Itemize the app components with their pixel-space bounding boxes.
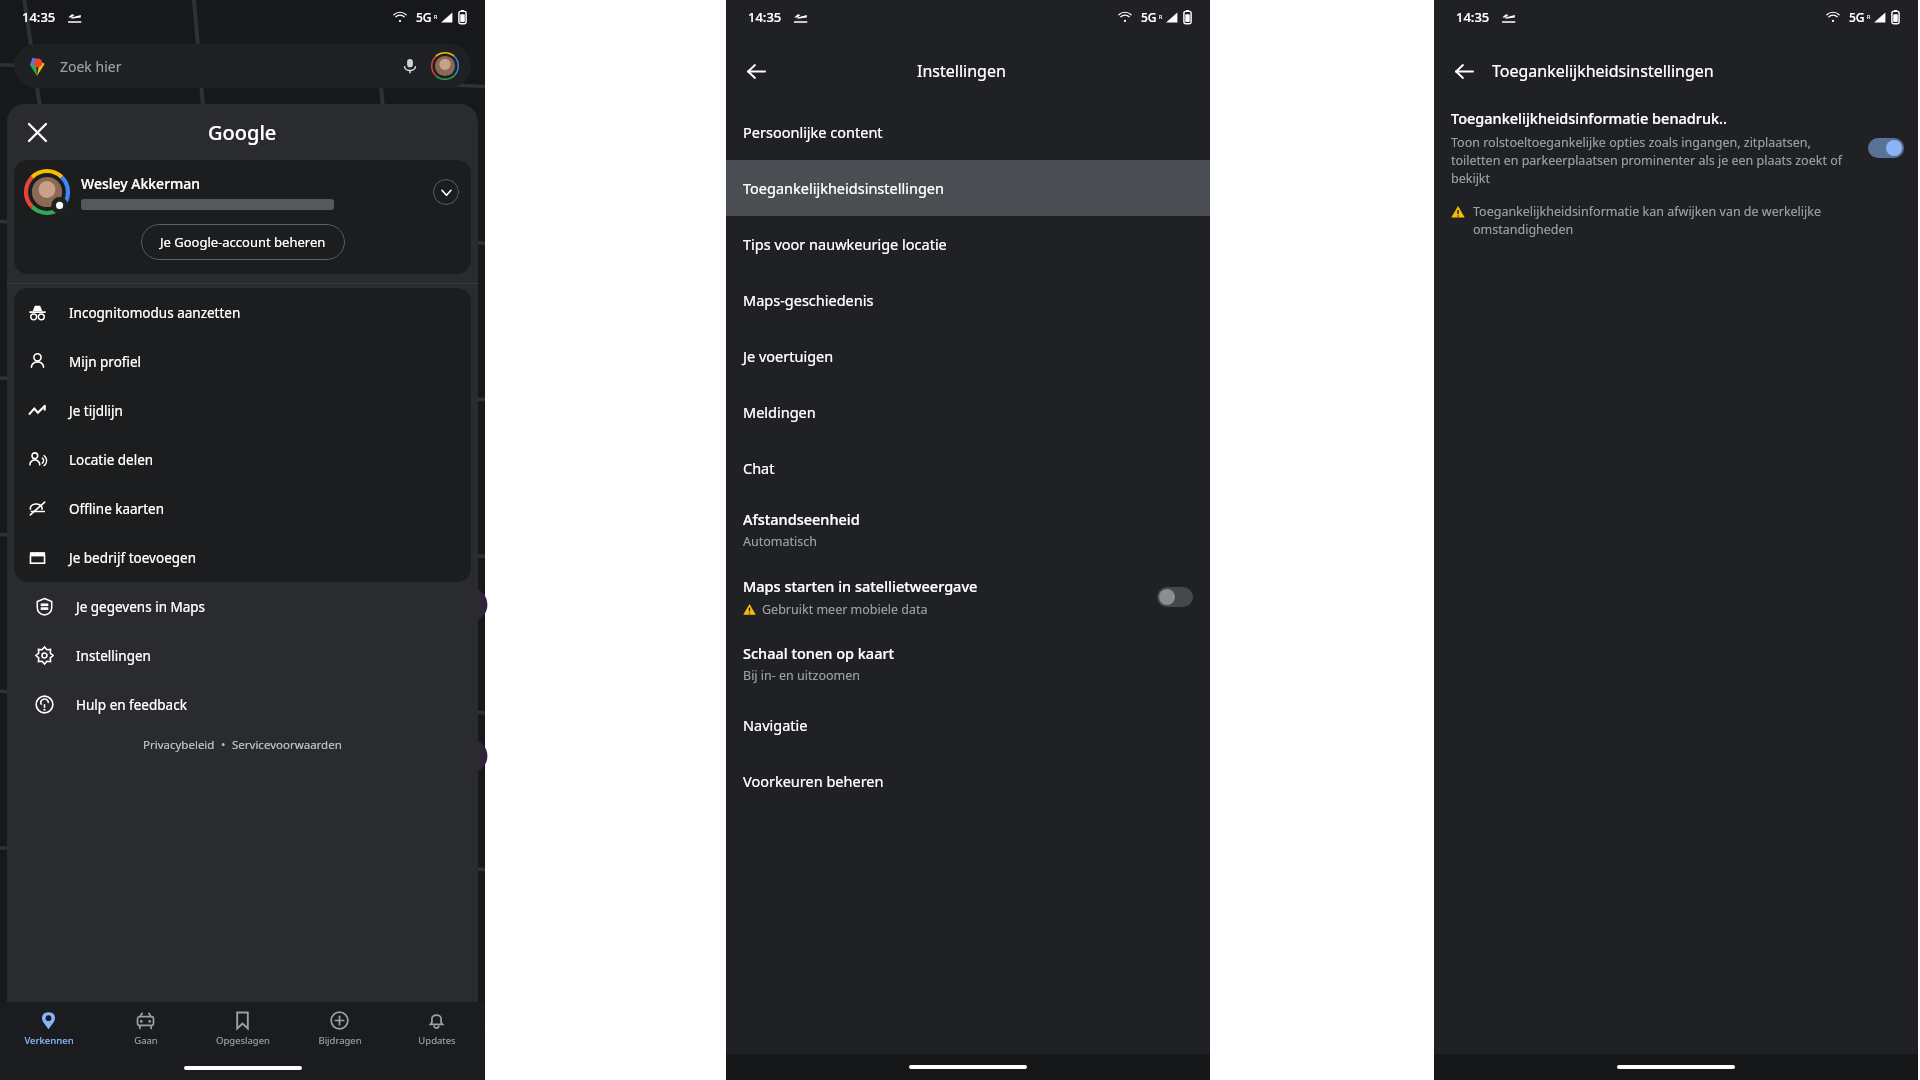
- staticText: Instellingen: [76, 647, 151, 665]
- button[interactable]: Verkennen: [0, 1002, 97, 1056]
- staticText: Zoek hier: [60, 57, 122, 76]
- staticText: Voorkeuren beheren: [743, 771, 884, 791]
- button[interactable]: Persoonlijke content: [726, 104, 1210, 160]
- button[interactable]: Toegankelijkheidsinformatie benadruk..: [1434, 108, 1918, 187]
- button[interactable]: Incognitomodus aanzetten: [14, 288, 471, 337]
- staticText: Je Google-account beheren: [160, 233, 326, 251]
- button[interactable]: Opgeslagen: [194, 1002, 291, 1056]
- button[interactable]: Offline kaarten: [14, 484, 471, 533]
- button[interactable]: Chat: [726, 440, 1210, 496]
- staticText: Navigatie: [743, 715, 808, 735]
- button[interactable]: Terug: [1444, 51, 1484, 91]
- button[interactable]: Locatie delen: [14, 435, 471, 484]
- staticText: Je bedrijf toevoegen: [69, 549, 197, 567]
- staticText: Toegankelijkheidsinstellingen: [743, 178, 944, 198]
- staticText: Afstandseenheid: [743, 509, 860, 529]
- button[interactable]: Wesley Akkerman: [14, 160, 471, 224]
- button[interactable]: Servicevoorwaarden: [232, 737, 342, 753]
- staticText: Tips voor nauwkeurige locatie: [743, 234, 947, 254]
- staticText: Offline kaarten: [69, 500, 165, 518]
- button[interactable]: Maps-geschiedenis: [726, 272, 1210, 328]
- button[interactable]: Updates: [388, 1002, 485, 1056]
- staticText: Bij in- en uitzoomen: [743, 667, 861, 684]
- staticText: Incognitomodus aanzetten: [69, 304, 241, 322]
- staticText: Persoonlijke content: [743, 122, 883, 142]
- button[interactable]: Voorkeuren beheren: [726, 753, 1210, 809]
- button[interactable]: Mijn profiel: [14, 337, 471, 386]
- staticText: 14:35: [22, 8, 56, 26]
- staticText: 14:35: [748, 8, 782, 26]
- button[interactable]: Account: [431, 52, 459, 80]
- staticText: 5G: [416, 9, 432, 25]
- button[interactable]: Privacybeleid: [143, 737, 215, 753]
- button[interactable]: Navigatie: [726, 697, 1210, 753]
- button[interactable]: Hulp en feedback: [7, 680, 478, 729]
- staticText: Wesley Akkerman: [81, 174, 201, 193]
- staticText: •: [215, 737, 232, 753]
- staticText: Automatisch: [743, 533, 817, 550]
- staticText: Je voertuigen: [743, 346, 834, 366]
- button[interactable]: Schaal tonen op kaart: [726, 630, 1210, 697]
- button[interactable]: Afstandseenheid: [726, 496, 1210, 563]
- button[interactable]: Je voertuigen: [726, 328, 1210, 384]
- staticText: ᴿ: [1159, 12, 1163, 23]
- button[interactable]: Je tijdlijn: [14, 386, 471, 435]
- staticText: Mijn profiel: [69, 353, 142, 371]
- staticText: Toegankelijkheidsinstellingen: [1492, 60, 1714, 82]
- button[interactable]: Je gegevens in Maps: [7, 582, 478, 631]
- staticText: ᴿ: [1867, 12, 1871, 23]
- staticText: Verkennen: [24, 1034, 74, 1047]
- button[interactable]: Bijdragen: [291, 1002, 388, 1056]
- staticText: ᴿ: [434, 12, 438, 23]
- staticText: Bijdragen: [318, 1034, 362, 1047]
- button[interactable]: Schakelaar: [1157, 587, 1193, 607]
- staticText: Opgeslagen: [216, 1034, 270, 1047]
- staticText: Je gegevens in Maps: [76, 598, 206, 616]
- button[interactable]: Maps starten in satellietweergave: [726, 563, 1210, 630]
- button[interactable]: Zoek hier: [14, 44, 471, 88]
- staticText: Locatie delen: [69, 451, 154, 469]
- staticText: Je tijdlijn: [69, 402, 123, 420]
- staticText: Meldingen: [743, 402, 816, 422]
- staticText: Maps-geschiedenis: [743, 290, 874, 310]
- staticText: Toon rolstoeltoegankelijke opties zoals …: [1451, 134, 1856, 187]
- staticText: Hulp en feedback: [76, 696, 187, 714]
- staticText: Updates: [418, 1034, 456, 1047]
- staticText: 5G: [1141, 9, 1157, 25]
- button[interactable]: Schakelaar: [1868, 138, 1904, 158]
- staticText: Gaan: [134, 1034, 158, 1047]
- staticText: Gebruikt meer mobiele data: [762, 601, 928, 618]
- staticText: Google: [208, 119, 277, 146]
- button[interactable]: Je Google-account beheren: [141, 224, 345, 260]
- button[interactable]: Sluiten: [17, 112, 57, 152]
- staticText: 14:35: [1456, 8, 1490, 26]
- staticText: Instellingen: [917, 60, 1006, 82]
- staticText: Toegankelijkheidsinformatie benadruk..: [1451, 108, 1728, 128]
- staticText: Schaal tonen op kaart: [743, 643, 895, 663]
- staticText: Chat: [743, 458, 775, 478]
- staticText: Maps starten in satellietweergave: [743, 576, 978, 596]
- button[interactable]: Je bedrijf toevoegen: [14, 533, 471, 582]
- button[interactable]: Gaan: [97, 1002, 194, 1056]
- button[interactable]: Tips voor nauwkeurige locatie: [726, 216, 1210, 272]
- button[interactable]: Voice search: [397, 53, 423, 79]
- button[interactable]: Terug: [736, 51, 776, 91]
- button[interactable]: Instellingen: [7, 631, 478, 680]
- staticText: 5G: [1849, 9, 1865, 25]
- button[interactable]: Toegankelijkheidsinstellingen: [726, 160, 1210, 216]
- staticText: Toegankelijkheidsinformatie kan afwijken…: [1473, 203, 1898, 238]
- button[interactable]: Accounts uitvouwen: [433, 179, 459, 205]
- button[interactable]: Meldingen: [726, 384, 1210, 440]
